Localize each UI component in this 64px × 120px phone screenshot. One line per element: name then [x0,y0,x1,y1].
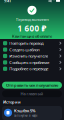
staticText: 1 600 ₽ [17,23,46,34]
button[interactable]: На главный [2,90,62,97]
staticText: Квитанция об оплате [12,34,52,39]
staticText: Подробнее о переводе [9,66,48,71]
staticText: ⌃ [52,0,55,3]
button[interactable]: Отправить чек получателю [2,82,62,89]
staticText: Кэшбэк 5% [14,108,36,113]
staticText: Повторить перевод [9,40,43,46]
staticText: Изменить получателя [9,53,48,59]
staticText: 9:41 [4,0,11,3]
button[interactable]: Квитанция об оплате [0,34,64,39]
button[interactable]: Изменить получателя [0,53,64,59]
button[interactable]: Создать шаблон [0,46,64,53]
button[interactable]: Подробнее о переводе [0,66,64,72]
staticText: за покупки в кафе [14,114,37,117]
staticText: Перевод выполнен [15,17,48,22]
button[interactable]: Кэшбэк 5% [2,106,62,120]
staticText: Отправить чек получателю [6,82,58,88]
staticText: На главный [20,91,43,96]
staticText: Истории [3,99,21,104]
staticText: Создать шаблон [9,47,39,52]
button[interactable]: Сообщить о проблеме [0,59,64,66]
button[interactable]: Повторить перевод [0,40,64,46]
staticText: Сообщить о проблеме [9,60,49,65]
